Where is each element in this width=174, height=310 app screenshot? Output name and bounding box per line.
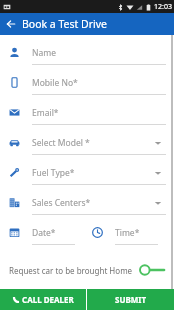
staticText: Sales Centers* — [32, 197, 91, 209]
staticText: Book a Test Drive — [22, 17, 108, 31]
button[interactable]: CALL DEALER — [0, 289, 86, 310]
button[interactable]: Time* — [83, 221, 166, 251]
staticText: Select Model * — [32, 137, 90, 149]
staticText: Fuel Type* — [32, 167, 75, 179]
staticText: 12:03 — [154, 2, 172, 12]
button[interactable]: SUBMIT — [87, 289, 174, 310]
button[interactable]: Email* — [0, 101, 174, 131]
staticText: Time* — [115, 227, 140, 239]
button[interactable]: Select Model * — [0, 131, 174, 161]
button[interactable]: Name — [0, 41, 174, 71]
staticText: CALL DEALER — [22, 294, 74, 305]
button[interactable]: Sales Centers* — [0, 191, 174, 221]
staticText: Mobile No* — [32, 77, 78, 89]
button[interactable]: Back — [0, 13, 22, 35]
staticText: Email* — [32, 107, 59, 119]
staticText: SUBMIT — [115, 294, 147, 305]
staticText: Date* — [32, 227, 56, 239]
button[interactable]: Fuel Type* — [0, 161, 174, 191]
staticText: Request car to be brought Home — [9, 265, 133, 276]
button[interactable]: Mobile No* — [0, 71, 174, 101]
button[interactable]: Date* — [0, 221, 83, 251]
button[interactable]: Request car to be brought Home — [0, 259, 174, 281]
staticText: Name — [32, 47, 56, 59]
